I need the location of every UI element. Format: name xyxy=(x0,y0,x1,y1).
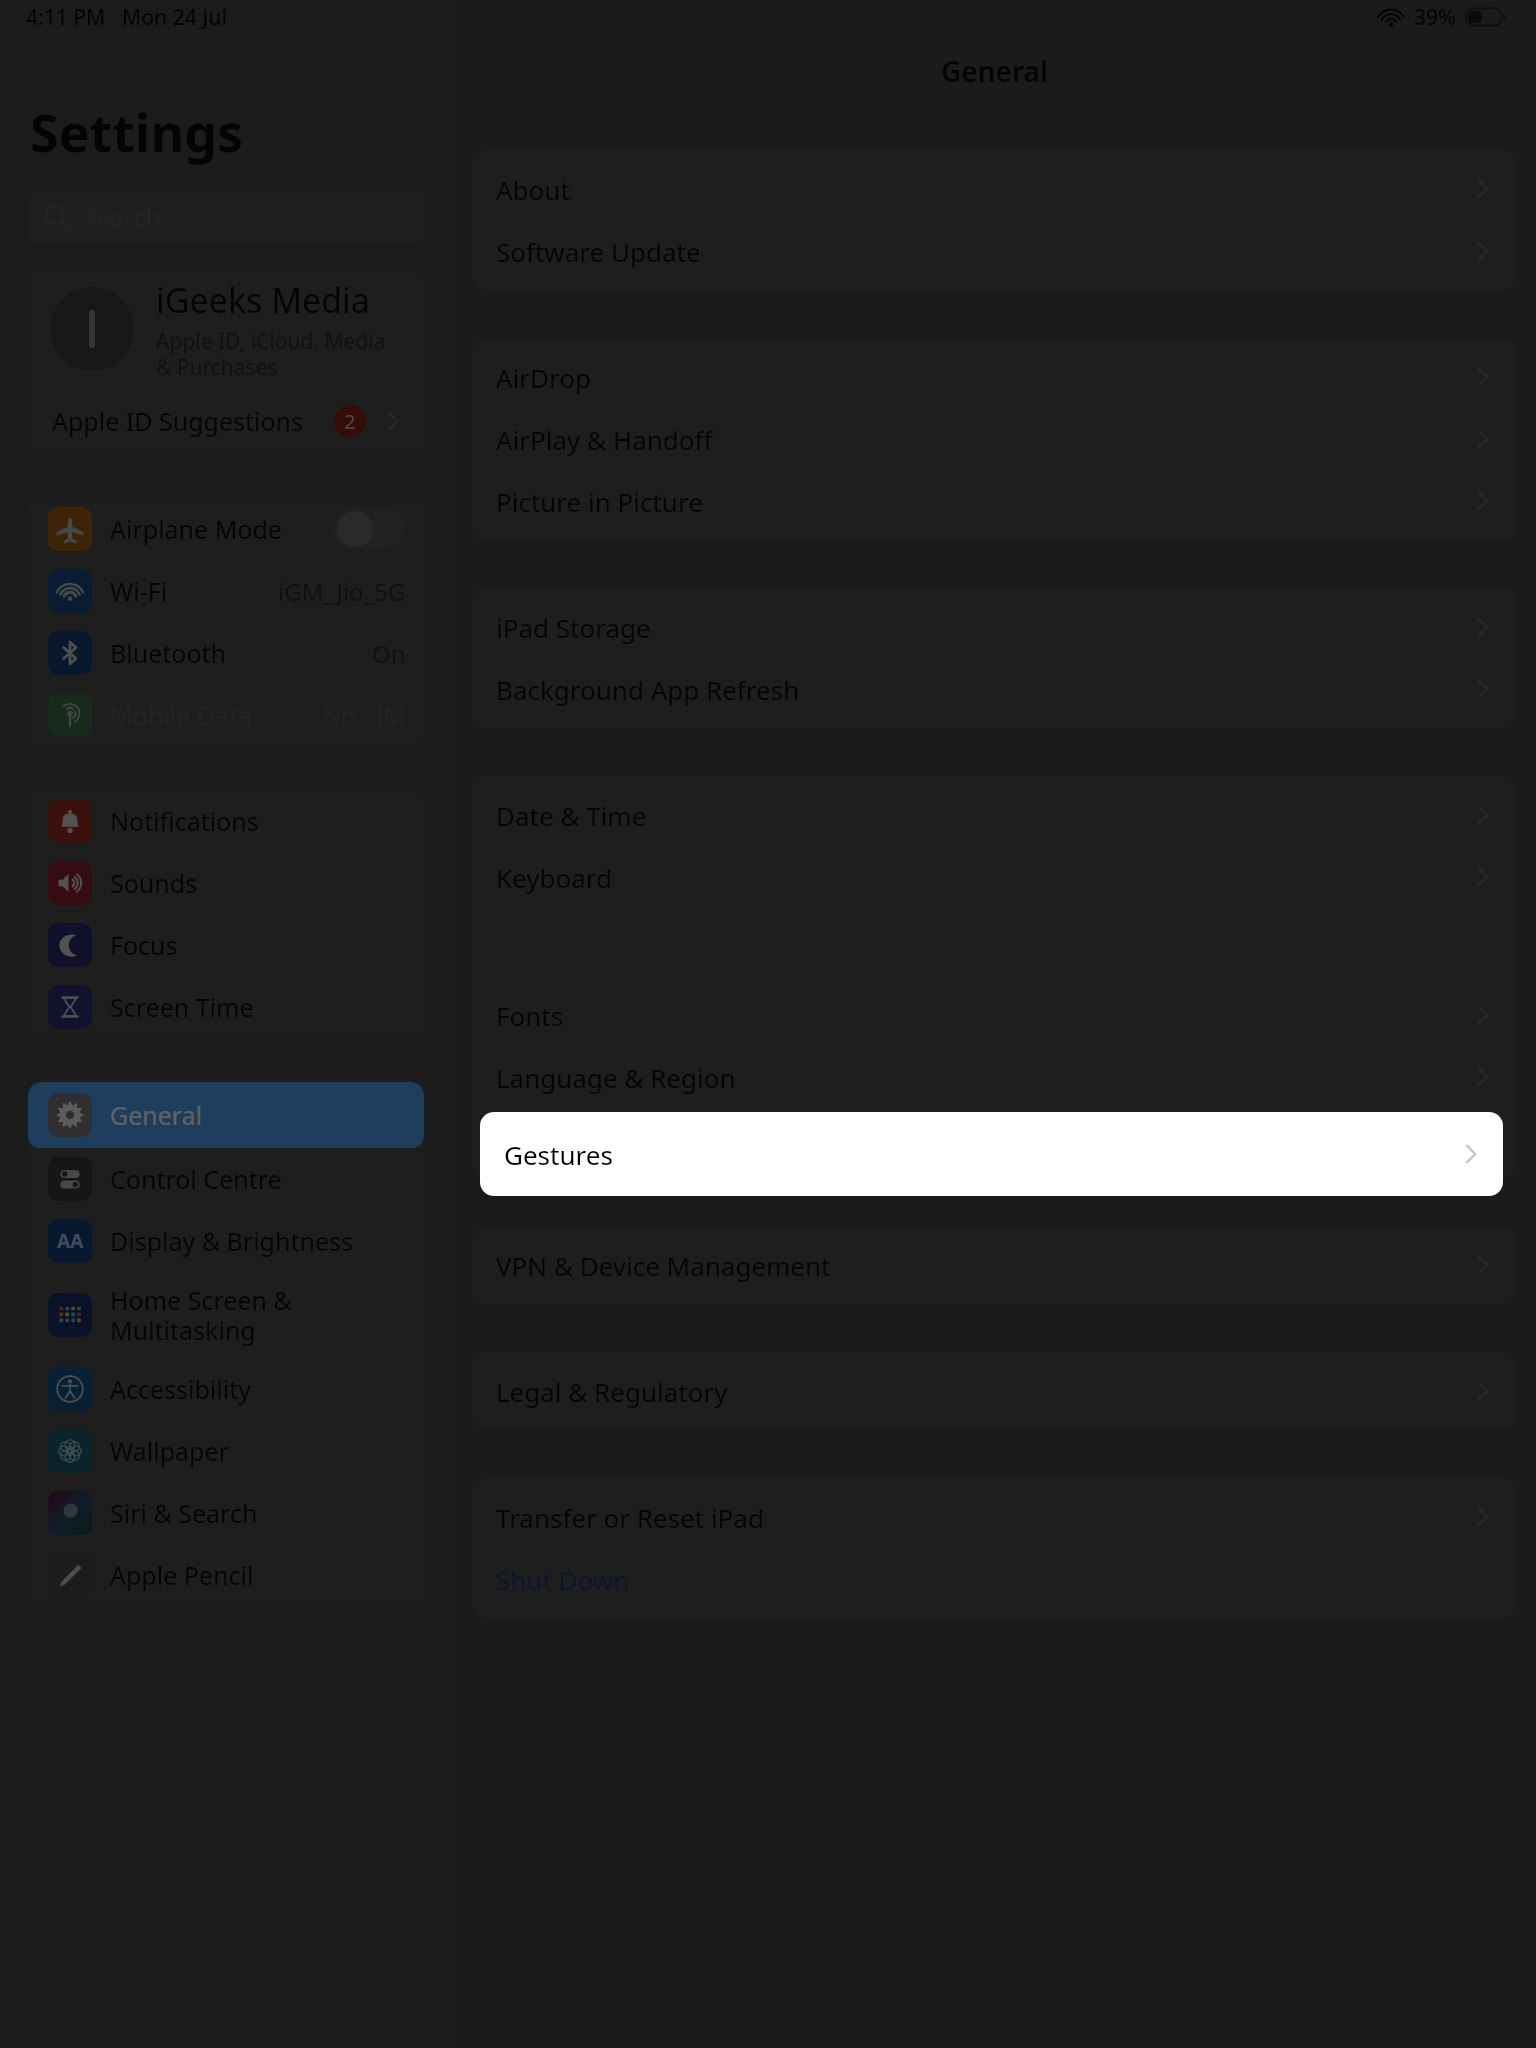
staticText: Display & Brightness xyxy=(110,1224,406,1258)
button[interactable]: Dictionary xyxy=(472,1108,1516,1170)
button[interactable]: Focus xyxy=(28,914,424,976)
staticText: Airplane Mode xyxy=(110,512,334,546)
staticText: Software Update xyxy=(496,234,1470,269)
staticText: 4:11 PM xyxy=(26,3,106,32)
button[interactable]: Airplane Mode xyxy=(28,498,424,560)
staticText: iGeeks Media xyxy=(156,277,370,323)
staticText: Language & Region xyxy=(496,1060,1470,1095)
button[interactable]: Screen Time xyxy=(28,976,424,1038)
staticText: Apple ID, iCloud, Media & Purchases xyxy=(156,327,386,381)
staticText: VPN & Device Management xyxy=(496,1248,1470,1283)
button[interactable]: iGeeks Media xyxy=(28,271,424,387)
staticText: Gestures xyxy=(504,1137,1459,1172)
staticText: Dictionary xyxy=(496,1122,1470,1157)
staticText: iPad Storage xyxy=(496,610,1470,645)
button[interactable]: Sounds xyxy=(28,852,424,914)
button[interactable]: Siri & Search xyxy=(28,1482,424,1544)
button[interactable]: General xyxy=(28,1082,424,1148)
staticText: On xyxy=(372,637,406,670)
button[interactable]: Accessibility xyxy=(28,1358,424,1420)
staticText: Legal & Regulatory xyxy=(496,1374,1470,1409)
button[interactable]: AA xyxy=(28,1210,424,1272)
button[interactable]: Language & Region xyxy=(472,1046,1516,1108)
staticText: Siri & Search xyxy=(110,1496,406,1530)
staticText: Picture in Picture xyxy=(496,484,1470,519)
button[interactable]: Background App Refresh xyxy=(472,658,1516,720)
button[interactable]: Home Screen & Multitasking xyxy=(28,1272,424,1358)
staticText: Wallpaper xyxy=(110,1434,406,1468)
staticText: Accessibility xyxy=(110,1372,406,1406)
staticText: 2 xyxy=(344,408,356,435)
button[interactable]: Notifications xyxy=(28,790,424,852)
button[interactable]: Bluetooth xyxy=(28,622,424,684)
button[interactable]: Apple Pencil xyxy=(28,1544,424,1606)
staticText: Keyboard xyxy=(496,860,1470,895)
staticText: AA xyxy=(57,1228,84,1254)
button[interactable]: Wallpaper xyxy=(28,1420,424,1482)
button[interactable]: Control Centre xyxy=(28,1148,424,1210)
staticText: Apple ID Suggestions xyxy=(52,404,334,438)
staticText: Settings xyxy=(30,96,244,167)
staticText: Date & Time xyxy=(496,798,1470,833)
staticText: Focus xyxy=(110,928,406,962)
staticText: Notifications xyxy=(110,804,406,838)
staticText: General xyxy=(110,1098,406,1132)
staticText: Apple Pencil xyxy=(110,1558,406,1592)
staticText: Screen Time xyxy=(110,990,406,1024)
staticText: Background App Refresh xyxy=(496,672,1470,707)
button[interactable]: Wi-Fi xyxy=(28,560,424,622)
staticText: Wi-Fi xyxy=(110,574,278,608)
staticText: Sounds xyxy=(110,866,406,900)
staticText: Control Centre xyxy=(110,1162,406,1196)
staticText: 39% xyxy=(1414,3,1456,32)
button[interactable]: Legal & Regulatory xyxy=(472,1360,1516,1422)
button[interactable]: Gestures xyxy=(480,1112,1503,1196)
staticText: Mon 24 Jul xyxy=(122,3,228,32)
staticText: AirPlay & Handoff xyxy=(496,422,1470,457)
staticText: Transfer or Reset iPad xyxy=(496,1500,1470,1535)
staticText: Home Screen & Multitasking xyxy=(110,1283,406,1347)
button[interactable]: Transfer or Reset iPad xyxy=(472,1486,1516,1548)
button[interactable]: VPN & Device Management xyxy=(472,1234,1516,1296)
button[interactable]: Mobile Data xyxy=(28,684,424,746)
staticText: iGM_Jio_5G xyxy=(278,575,406,608)
button[interactable]: Apple ID Suggestions xyxy=(28,388,424,454)
staticText: Bluetooth xyxy=(110,636,372,670)
staticText: General xyxy=(941,52,1048,90)
